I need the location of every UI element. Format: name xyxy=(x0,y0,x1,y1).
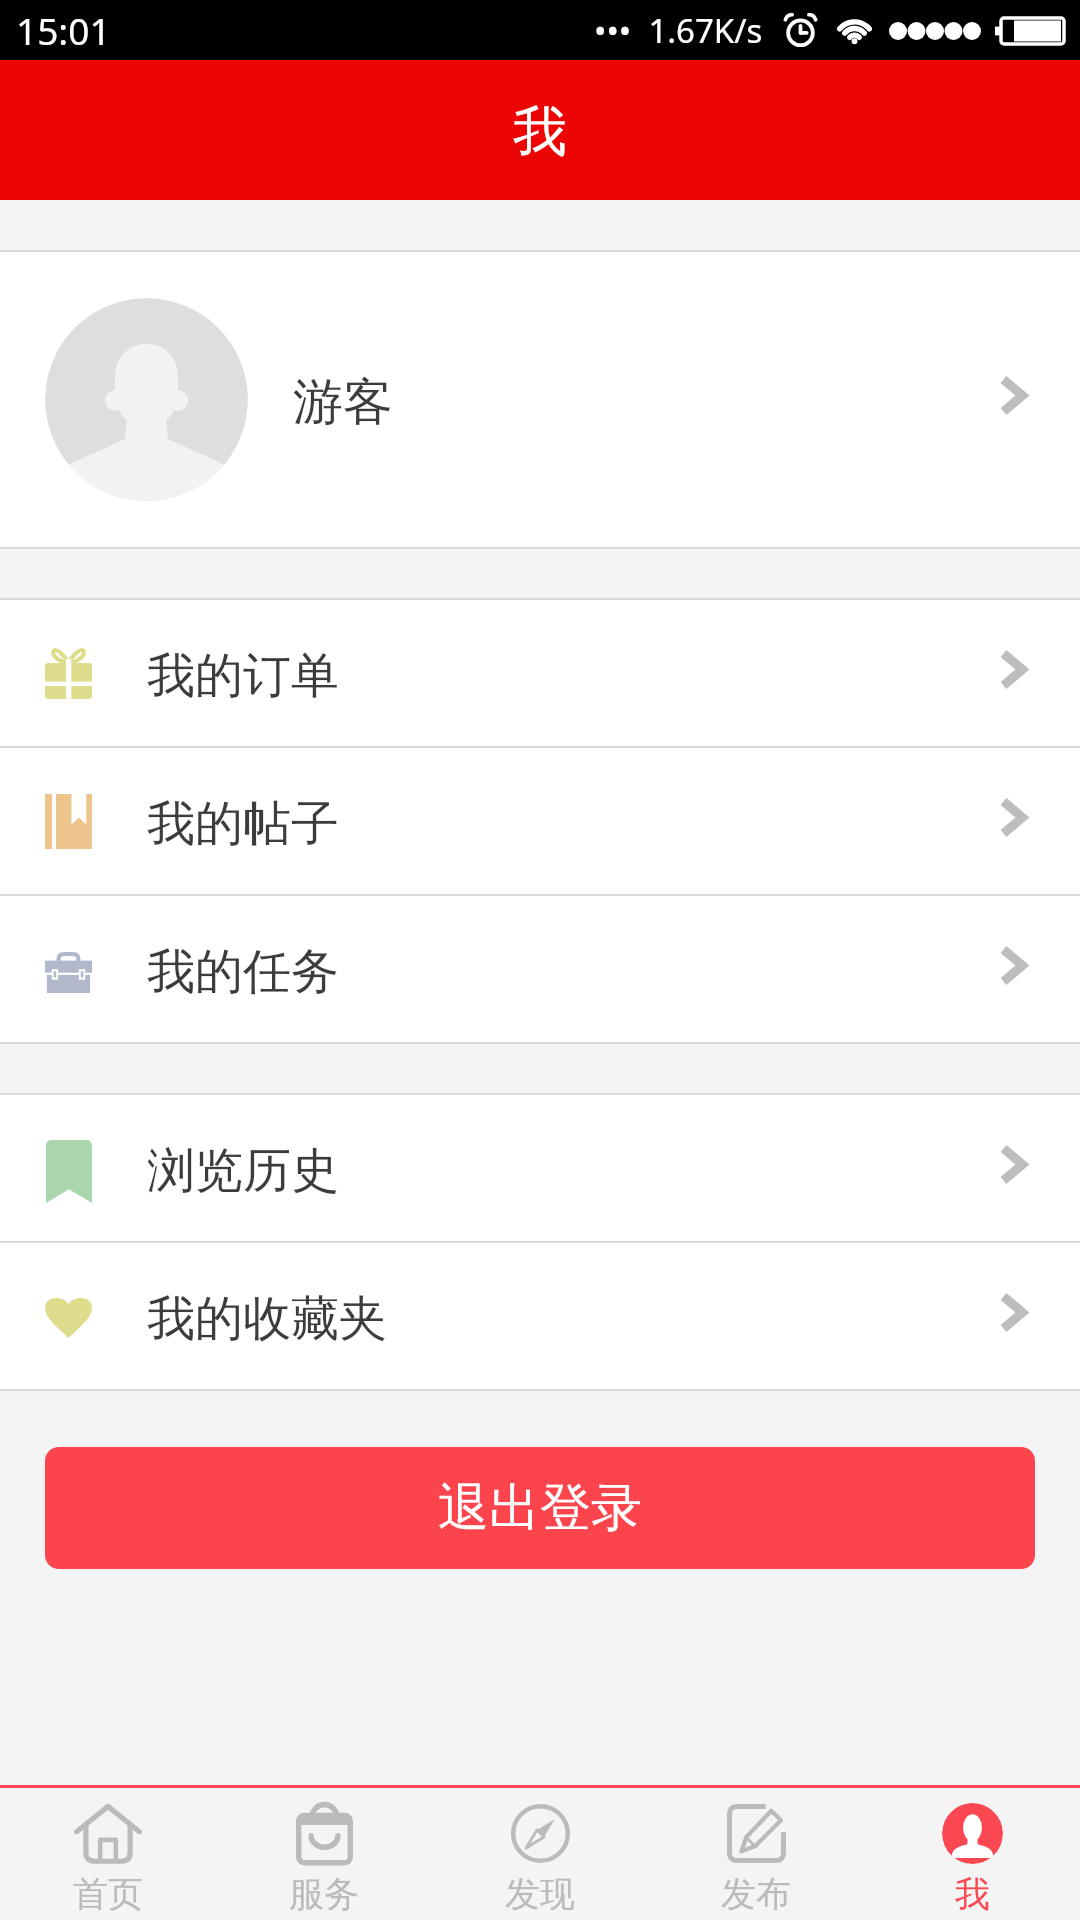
staticText: 我的帖子 xyxy=(147,794,339,854)
staticText: 我 xyxy=(513,98,567,166)
staticText: 发现 xyxy=(505,1872,575,1916)
button[interactable]: 我的任务 xyxy=(0,896,1080,1042)
staticText: 我 xyxy=(955,1872,990,1916)
staticText: 我的收藏夹 xyxy=(147,1289,387,1349)
button[interactable]: 我的订单 xyxy=(0,600,1080,746)
staticText: 浏览历史 xyxy=(147,1141,339,1201)
staticText: 我的订单 xyxy=(147,646,339,706)
button[interactable]: 发现 xyxy=(432,1788,648,1920)
staticText: 发布 xyxy=(721,1872,791,1916)
staticText: 服务 xyxy=(289,1872,359,1916)
staticText: 我的任务 xyxy=(147,942,339,1002)
button[interactable]: 服务 xyxy=(216,1788,432,1920)
button[interactable]: 我的收藏夹 xyxy=(0,1243,1080,1389)
staticText: ••• 1.67K/s xyxy=(594,8,763,53)
staticText: 15:01 xyxy=(16,5,111,55)
button[interactable]: 游客 xyxy=(0,252,1080,547)
button[interactable]: 我 xyxy=(864,1788,1080,1920)
button[interactable]: 浏览历史 xyxy=(0,1095,1080,1241)
button[interactable]: 发布 xyxy=(648,1788,864,1920)
button[interactable]: 退出登录 xyxy=(45,1447,1035,1569)
staticText: 退出登录 xyxy=(438,1476,642,1540)
staticText: 首页 xyxy=(73,1872,143,1916)
button[interactable]: 首页 xyxy=(0,1788,216,1920)
staticText: 游客 xyxy=(293,371,393,434)
button[interactable]: 我的帖子 xyxy=(0,748,1080,894)
